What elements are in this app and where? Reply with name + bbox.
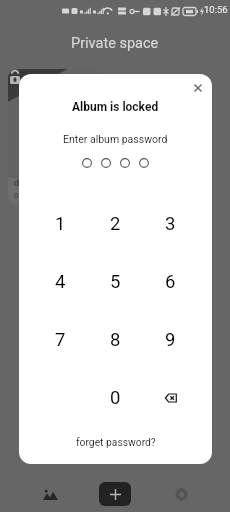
staticText: 8 [110, 329, 121, 351]
staticText: 3 [165, 213, 176, 235]
button[interactable]: 1 [33, 195, 88, 253]
staticText: 6 [165, 271, 176, 293]
staticText: Private space [71, 35, 159, 52]
button[interactable]: 2 [88, 195, 143, 253]
button[interactable]: forget password? [70, 433, 162, 451]
button[interactable]: 4 [33, 253, 88, 311]
staticText: dog [14, 178, 30, 189]
staticText: Enter album password [63, 133, 168, 145]
button[interactable]: 9 [143, 311, 198, 369]
staticText: 7 [55, 329, 66, 351]
other: Backspace [165, 393, 177, 403]
button[interactable]: 3 [143, 195, 198, 253]
button[interactable]: 7 [33, 311, 88, 369]
button[interactable]: 8 [88, 311, 143, 369]
button[interactable]: 5 [88, 253, 143, 311]
staticText: Album is locked [72, 100, 159, 114]
staticText: 2 [110, 213, 121, 235]
staticText: 10:56 [204, 4, 228, 15]
button[interactable]: 6 [143, 253, 198, 311]
button[interactable]: Add [99, 482, 131, 506]
staticText: 5 [110, 271, 121, 293]
staticText: forget password? [76, 436, 156, 448]
staticText: 4 [55, 271, 66, 293]
button[interactable]: 0 [88, 369, 143, 427]
button[interactable]: Gallery [30, 476, 70, 512]
staticText: 0 items [14, 191, 41, 200]
staticText: 0 [110, 387, 121, 409]
button[interactable]: Settings [161, 476, 201, 512]
button[interactable]: Backspace [143, 369, 198, 427]
staticText: 1 [55, 213, 66, 235]
staticText: 9 [165, 329, 176, 351]
button[interactable]: Close [184, 74, 211, 101]
